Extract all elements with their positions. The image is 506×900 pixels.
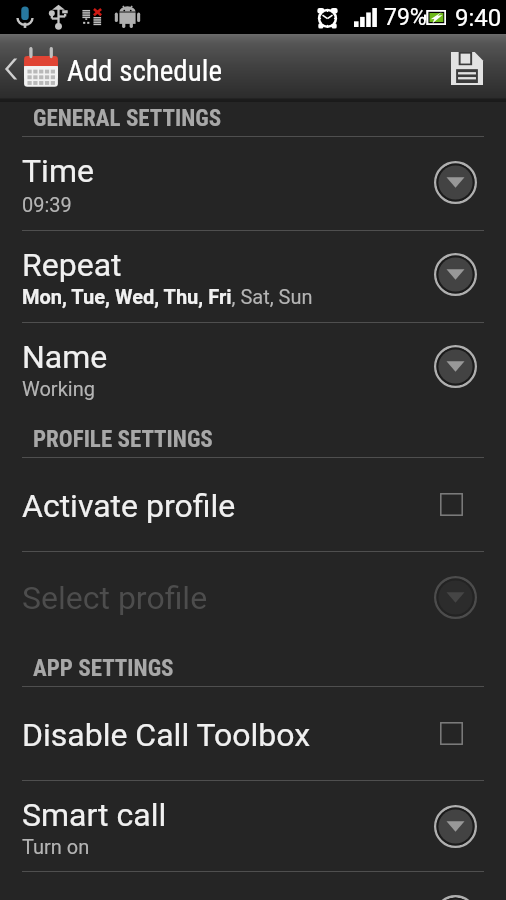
button[interactable]: Open list [434,895,477,900]
staticText: Name [22,338,108,376]
button[interactable]: Navigate up [0,34,62,100]
staticText: Time [22,152,94,190]
staticText: Select profile [22,579,208,617]
staticText: Working [22,377,95,400]
staticText: APP SETTINGS [33,655,174,682]
button[interactable] [0,136,506,230]
staticText: Activate profile [22,487,236,525]
button[interactable]: Open list [434,253,477,296]
staticText: Repeat [22,246,122,284]
button[interactable] [0,551,506,645]
staticText: Smart call [22,796,167,834]
staticText: 79% [384,4,427,31]
button[interactable] [0,322,506,414]
button[interactable]: Open list [434,345,477,388]
button[interactable]: Save [442,34,492,100]
button[interactable]: Checkbox [430,483,473,526]
button[interactable]: Open list [434,805,477,848]
staticText: PROFILE SETTINGS [33,426,213,453]
staticText: Mon, Tue, Wed, Thu, Fri, Sat, Sun [22,285,313,308]
button[interactable]: Open list [434,161,477,204]
staticText: Add schedule [67,54,223,88]
staticText: 9:40 [455,4,502,32]
button[interactable] [0,780,506,871]
button[interactable] [0,871,506,900]
button[interactable]: Checkbox [430,712,473,755]
button[interactable] [0,686,506,780]
staticText: Disable Call Toolbox [22,716,311,754]
button[interactable] [0,457,506,551]
button[interactable] [0,230,506,322]
staticText: GENERAL SETTINGS [33,105,222,132]
staticText: 09:39 [22,193,72,216]
button[interactable]: Open list [434,576,477,619]
staticText: Turn on [22,835,90,858]
